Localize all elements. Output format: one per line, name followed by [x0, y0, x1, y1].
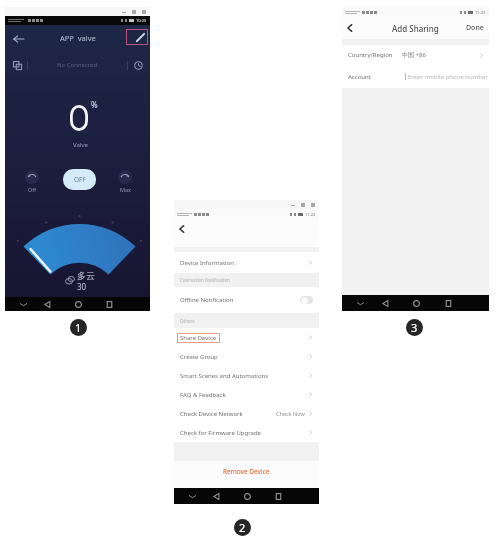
button[interactable]: Share Device — [174, 328, 319, 347]
button[interactable]: Edit — [134, 31, 146, 43]
staticText: Valve — [73, 141, 88, 149]
staticText: 10:25 — [136, 18, 147, 23]
staticText: 1 — [75, 320, 82, 335]
button[interactable]: Done — [466, 23, 484, 33]
staticText: Offline Notification — [180, 296, 234, 304]
button[interactable]: Home — [72, 298, 84, 310]
button[interactable]: Hide keyboard — [186, 490, 198, 502]
button[interactable]: Create Group — [174, 347, 319, 366]
button[interactable]: Offline Notification — [174, 287, 319, 313]
button[interactable]: Back — [210, 490, 222, 502]
staticText: Check Now — [276, 410, 305, 417]
staticText: Check Device Network — [180, 410, 243, 418]
button[interactable]: Device Information — [174, 252, 319, 273]
button[interactable]: Off — [25, 170, 39, 193]
staticText: Smart Scenes and Automations — [180, 372, 269, 380]
button[interactable]: Timer — [132, 59, 145, 72]
button[interactable]: Remove Device — [223, 467, 270, 476]
staticText: Account — [348, 73, 371, 81]
button[interactable]: Device — [11, 59, 24, 72]
staticText: Off — [28, 186, 37, 193]
button[interactable]: Home — [410, 297, 422, 309]
staticText: 中国 +86 — [402, 51, 426, 59]
staticText: Max — [120, 186, 131, 193]
button[interactable]: Back — [176, 223, 188, 235]
staticText: FAQ & Feedback — [180, 391, 226, 399]
staticText: OFF — [74, 175, 86, 184]
staticText: Connection Notification — [180, 277, 230, 283]
button[interactable]: Recents — [272, 490, 284, 502]
staticText: Check for Firmware Upgrade — [180, 429, 261, 437]
staticText: Create Group — [180, 353, 218, 361]
button[interactable]: Recents — [103, 298, 115, 310]
staticText: % — [91, 99, 98, 110]
staticText: 11:22 — [305, 212, 316, 217]
button[interactable]: Back — [41, 298, 53, 310]
button[interactable]: FAQ & Feedback — [174, 385, 319, 404]
staticText: Add Sharing — [392, 23, 439, 34]
button[interactable]: Back — [379, 297, 391, 309]
button[interactable]: Check Device Network — [174, 404, 319, 423]
button[interactable]: Recents — [442, 297, 454, 309]
staticText: APP valve — [60, 33, 96, 43]
staticText: Others — [180, 318, 195, 324]
button[interactable]: Back — [12, 32, 25, 45]
staticText: Country/Region — [348, 51, 393, 59]
button[interactable]: Country/Region — [342, 45, 489, 65]
button[interactable]: Max — [118, 170, 132, 193]
staticText: 多云 — [77, 270, 95, 281]
staticText: 11:22 — [475, 10, 486, 15]
button[interactable]: Home — [241, 490, 253, 502]
staticText: Enter mobile phone number — [408, 73, 488, 81]
button[interactable]: Hide keyboard — [354, 297, 366, 309]
staticText: 2 — [239, 520, 246, 535]
button[interactable]: OFF — [63, 169, 96, 190]
staticText: 30 — [77, 281, 87, 292]
button[interactable]: Check for Firmware Upgrade — [174, 423, 319, 442]
staticText: No Connected — [57, 61, 98, 69]
button[interactable]: Smart Scenes and Automations — [174, 366, 319, 385]
staticText: Device Information — [180, 259, 235, 267]
staticText: Share Device — [180, 334, 217, 342]
button[interactable]: Hide keyboard — [17, 298, 29, 310]
staticText: 3 — [411, 320, 418, 335]
button[interactable]: Back — [344, 22, 356, 34]
